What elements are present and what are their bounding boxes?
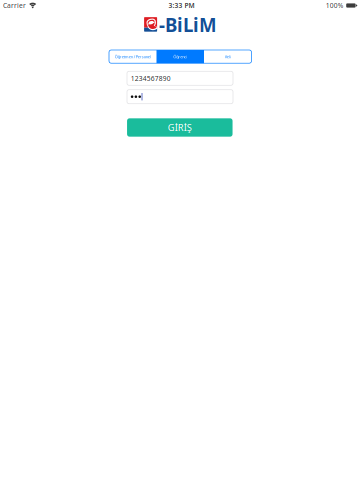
- button[interactable]: Öğrenci: [156, 50, 204, 63]
- staticText: 1234567890: [131, 74, 171, 83]
- staticText: 100%: [326, 1, 344, 10]
- button[interactable]: Öğretmen / Personel: [109, 50, 156, 63]
- staticText: -BiLiM: [159, 12, 217, 37]
- button[interactable]: Kullanıcı adı: 1234567890: [127, 71, 233, 85]
- staticText: Öğrenci: [173, 54, 187, 59]
- button[interactable]: Veli: [204, 50, 251, 63]
- staticText: 3:33 PM: [168, 1, 194, 10]
- button[interactable]: GİRİŞ: [127, 118, 233, 137]
- staticText: Öğretmen / Personel: [115, 54, 151, 59]
- staticText: Veli: [225, 54, 231, 59]
- staticText: Carrier: [3, 1, 26, 10]
- button[interactable]: Şifre: [127, 90, 233, 104]
- staticText: GİRİŞ: [168, 121, 192, 134]
